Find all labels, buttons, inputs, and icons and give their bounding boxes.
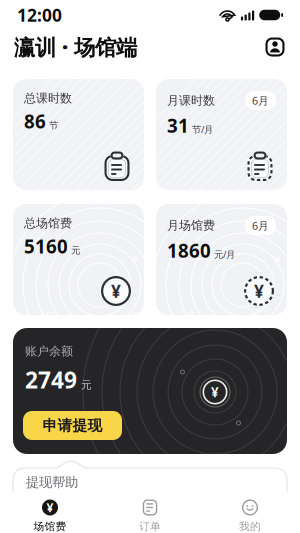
staticText: 账户余额 [25, 344, 73, 359]
staticText: 1860 [167, 238, 211, 263]
staticText: ¥ [211, 383, 219, 401]
staticText: 总场馆费 [24, 216, 72, 231]
staticText: ¥ [254, 279, 264, 302]
button[interactable]: 提现帮助 [13, 461, 287, 533]
staticText: 6月 [252, 93, 269, 108]
staticText: ¥ [46, 499, 53, 515]
staticText: 场馆费 [33, 520, 66, 533]
staticText: 我的 [239, 520, 261, 533]
button[interactable]: ¥ [0, 492, 100, 533]
staticText: 申请提现 [42, 416, 102, 434]
staticText: 月场馆费 [167, 218, 215, 233]
staticText: 2749 [25, 365, 77, 395]
staticText: 月课时数 [167, 93, 215, 108]
staticText: 元 [81, 378, 92, 392]
staticText: 提现帮助 [26, 474, 78, 490]
button[interactable]: Account [264, 36, 286, 58]
staticText: ¥ [111, 279, 121, 302]
staticText: 节 [49, 119, 58, 131]
staticText: 31 [167, 113, 189, 138]
button[interactable]: 申请提现 [25, 411, 124, 440]
staticText: 12:00 [17, 3, 62, 26]
staticText: 订单 [139, 520, 161, 533]
staticText: 元/月 [214, 248, 235, 260]
staticText: 86 [24, 109, 46, 133]
button[interactable]: 我的 [200, 492, 300, 533]
staticText: 元 [71, 244, 80, 256]
staticText: 5160 [24, 234, 68, 258]
staticText: 总课时数 [24, 91, 72, 106]
staticText: 节/月 [192, 123, 213, 135]
button[interactable]: 订单 [100, 492, 200, 533]
staticText: 6月 [252, 218, 269, 233]
staticText: 瀛训 · 场馆端 [14, 33, 137, 61]
